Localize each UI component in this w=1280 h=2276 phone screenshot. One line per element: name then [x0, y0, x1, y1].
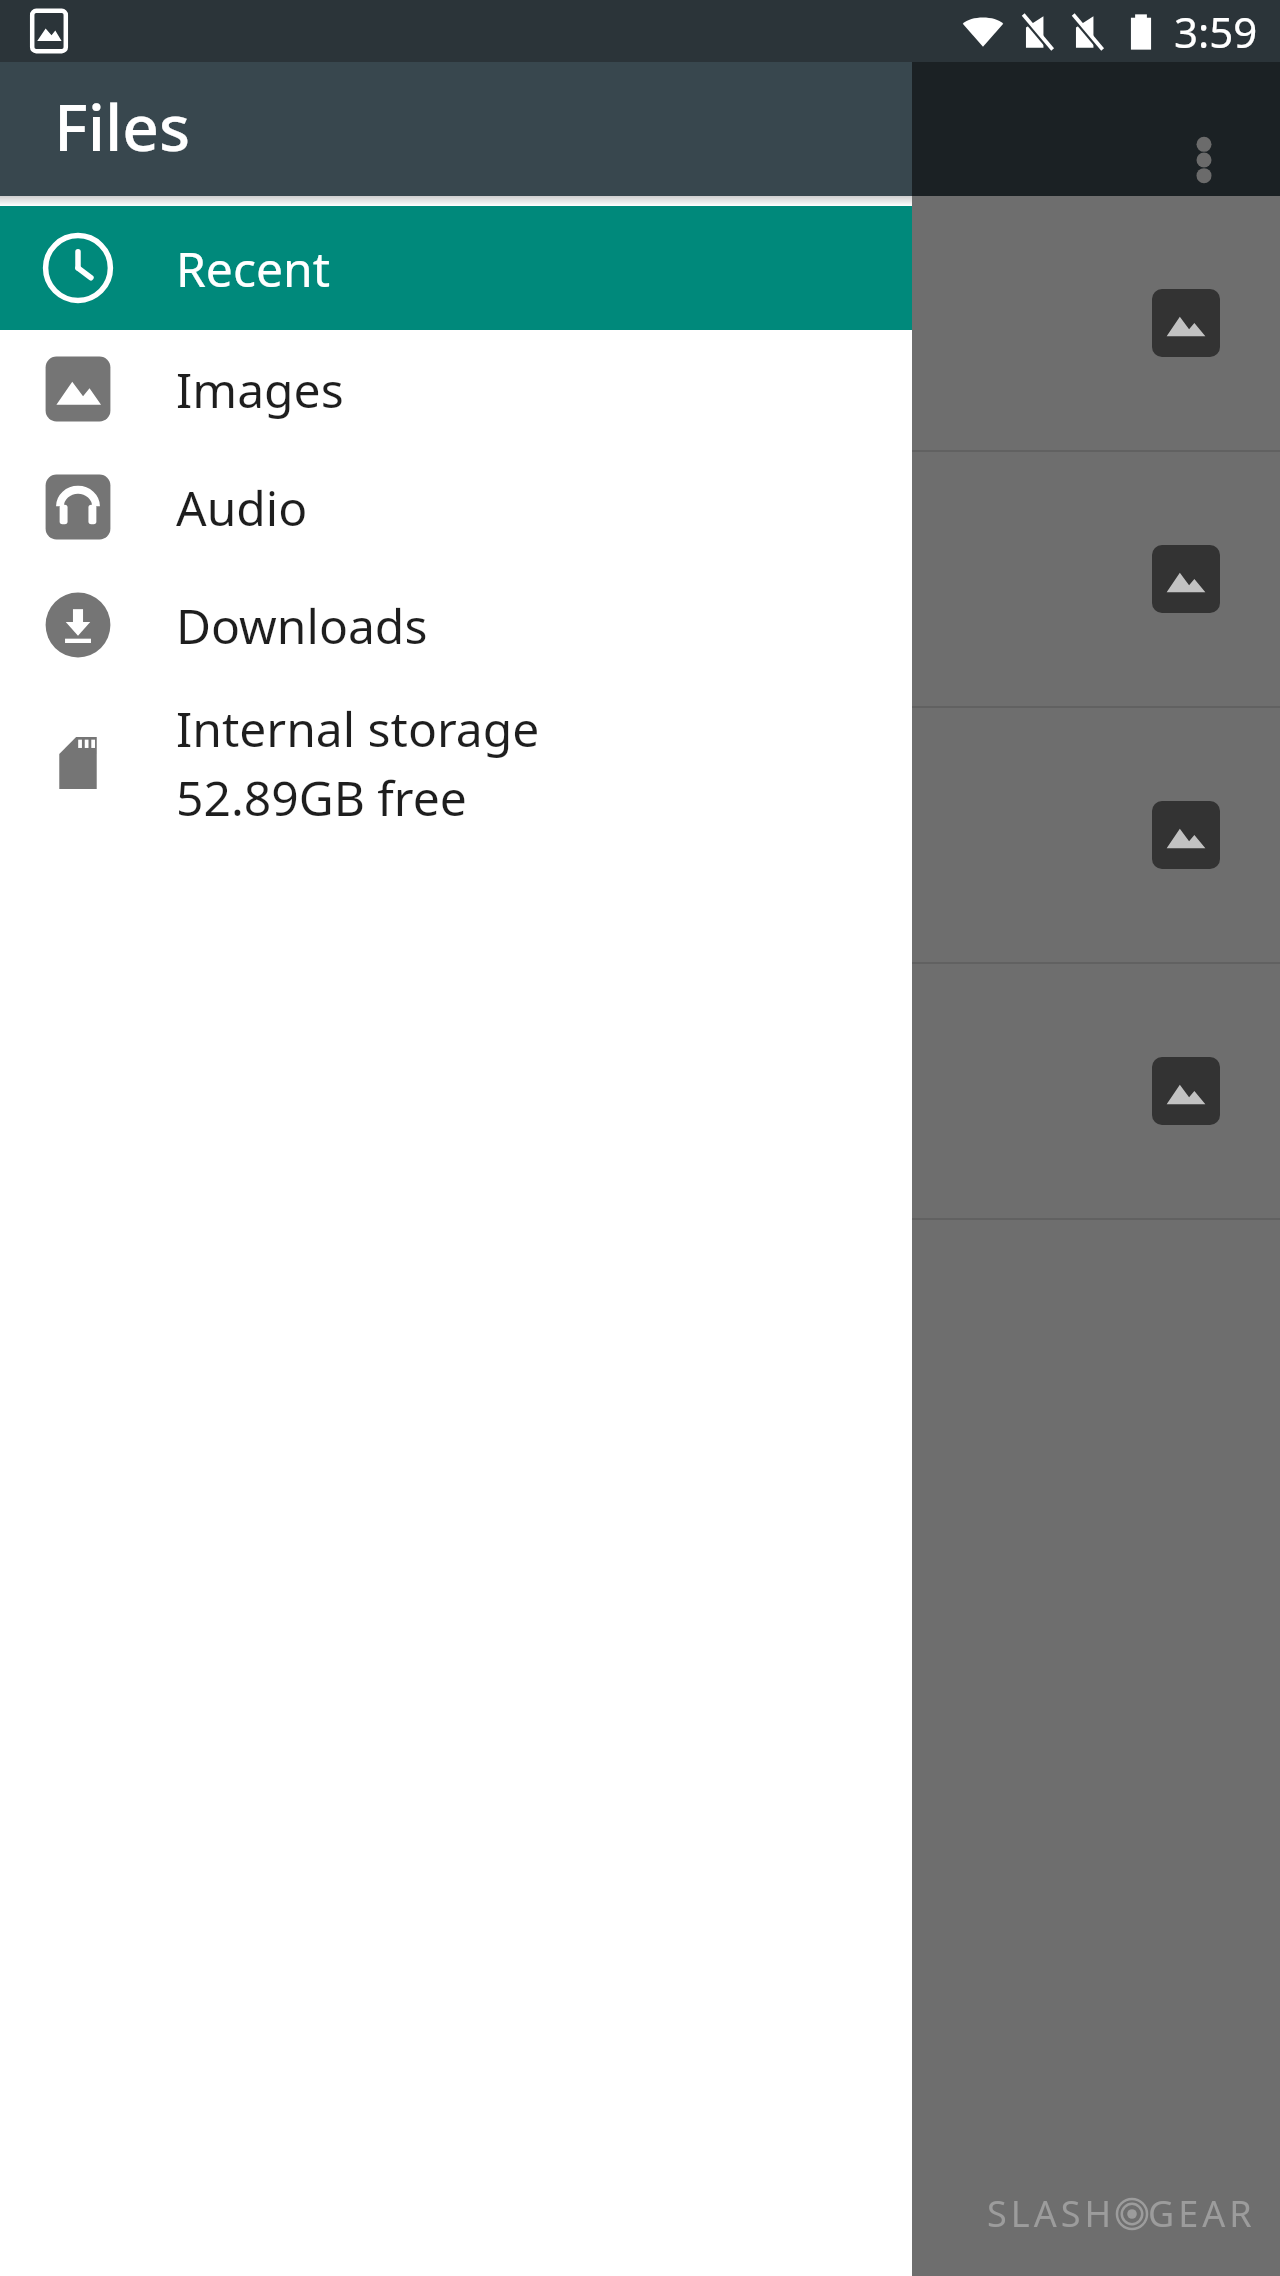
staticText: Downloads	[176, 593, 428, 658]
staticText: 3:59	[1174, 3, 1258, 60]
button[interactable]: 21.png	[0, 452, 1280, 706]
staticText: Audio	[176, 475, 308, 540]
staticText: 52.89GB free	[176, 765, 467, 830]
button[interactable]: Downloads	[0, 566, 912, 684]
button[interactable]: 46.png	[0, 964, 1280, 1218]
button[interactable]: 55.png	[0, 196, 1280, 450]
staticText: GEAR	[1148, 2189, 1256, 2238]
button[interactable]: Audio	[0, 448, 912, 566]
staticText: Files	[54, 83, 191, 170]
staticText: SLASH	[987, 2189, 1116, 2238]
staticText: Internal storage	[176, 696, 540, 761]
staticText: Recent	[176, 236, 331, 301]
button[interactable]: 57.png	[0, 708, 1280, 962]
button[interactable]: More options	[1162, 118, 1246, 202]
staticText: 55.png	[630, 292, 780, 355]
button[interactable]: Internal storage	[0, 684, 912, 842]
button[interactable]: Recent	[0, 206, 912, 330]
staticText: Images	[176, 357, 344, 422]
button[interactable]: Images	[0, 330, 912, 448]
